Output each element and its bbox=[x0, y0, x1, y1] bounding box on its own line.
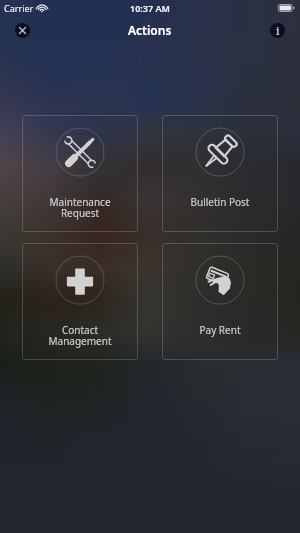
staticText: Carrier bbox=[4, 2, 34, 14]
staticText: Actions bbox=[128, 22, 172, 38]
button[interactable]: Information bbox=[270, 23, 285, 38]
staticText: Maintenance Request bbox=[22, 195, 138, 220]
staticText: Bulletin Post bbox=[162, 195, 278, 209]
button[interactable]: Close bbox=[15, 23, 30, 38]
button[interactable]: Pay Rent bbox=[162, 243, 278, 360]
button[interactable]: Maintenance Request bbox=[22, 115, 138, 232]
staticText: Contact Management bbox=[22, 323, 138, 348]
button[interactable]: Bulletin Post bbox=[162, 115, 278, 232]
staticText: 10:37 AM bbox=[130, 2, 170, 14]
staticText: i bbox=[276, 24, 280, 38]
button[interactable]: Contact Management bbox=[22, 243, 138, 360]
staticText: Pay Rent bbox=[162, 323, 278, 337]
